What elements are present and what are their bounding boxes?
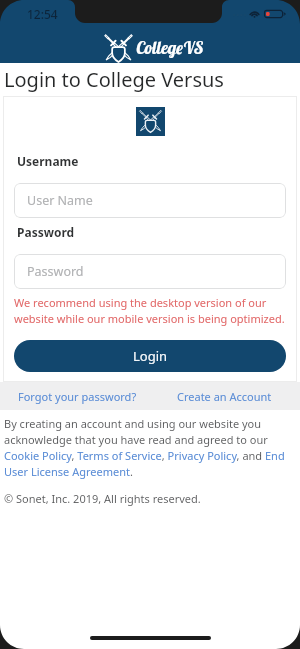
staticText: Password <box>17 224 75 240</box>
button[interactable]: Create an Account <box>173 386 276 407</box>
staticText: Username <box>17 153 79 169</box>
staticText: Password <box>27 263 84 280</box>
staticText: 12:54 <box>27 6 58 22</box>
button[interactable]: Password <box>14 254 286 289</box>
staticText: User Name <box>27 192 93 209</box>
staticText: © Sonet, Inc. 2019, All rights reserved. <box>4 491 201 506</box>
staticText: By creating an account and using our web… <box>4 416 294 479</box>
staticText: Forgot your password? <box>18 389 137 404</box>
button[interactable]: User Name <box>14 183 286 218</box>
staticText: Create an Account <box>177 389 272 404</box>
staticText: Login to College Versus <box>4 66 224 93</box>
staticText: CollegeVS <box>136 37 204 58</box>
staticText: Login <box>133 347 168 365</box>
staticText: We recommend using the desktop version o… <box>14 295 286 327</box>
button[interactable]: Login <box>14 340 286 372</box>
button[interactable]: Forgot your password? <box>14 386 141 407</box>
